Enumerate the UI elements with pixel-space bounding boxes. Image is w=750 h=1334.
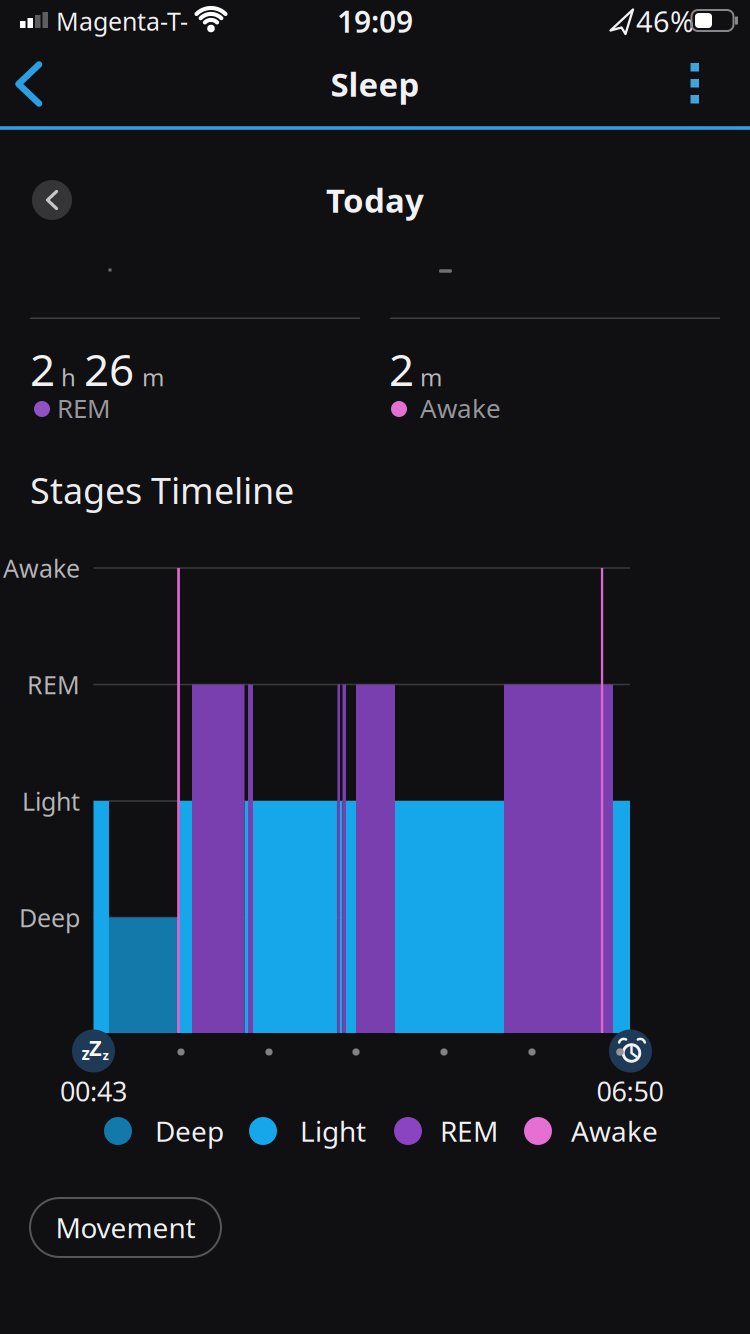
staticText: 46% xyxy=(636,1,694,41)
staticText: REM xyxy=(57,390,111,426)
button[interactable]: More options xyxy=(672,54,716,112)
staticText: Light xyxy=(300,1112,366,1150)
staticText: 19:09 xyxy=(337,1,413,41)
staticText: Z xyxy=(89,1032,102,1062)
staticText: Light xyxy=(22,784,80,818)
button[interactable]: Previous day xyxy=(32,180,72,220)
staticText: z xyxy=(102,1046,108,1064)
staticText: Magenta-T- xyxy=(56,4,188,38)
staticText: REM xyxy=(27,667,80,701)
staticText: m xyxy=(142,361,164,393)
staticText: z xyxy=(81,1042,89,1065)
staticText: Sleep xyxy=(330,61,419,106)
staticText: 06:50 xyxy=(596,1073,663,1109)
staticText: Movement xyxy=(55,1208,195,1246)
staticText: Deep xyxy=(19,900,80,934)
staticText: Awake xyxy=(571,1112,658,1150)
staticText: h xyxy=(61,361,76,393)
staticText: 2 xyxy=(389,339,414,399)
staticText: 2 xyxy=(30,339,55,399)
staticText: REM xyxy=(440,1112,498,1150)
staticText: 26 xyxy=(84,339,134,399)
staticText: 00:43 xyxy=(60,1073,127,1109)
staticText: Stages Timeline xyxy=(30,465,294,514)
staticText: Today xyxy=(326,177,424,222)
button[interactable]: Back xyxy=(6,53,52,114)
staticText: Awake xyxy=(420,390,501,426)
button[interactable]: Movement xyxy=(30,1198,221,1257)
staticText: m xyxy=(420,361,442,393)
staticText: Deep xyxy=(155,1112,224,1150)
staticText: Awake xyxy=(3,551,80,585)
